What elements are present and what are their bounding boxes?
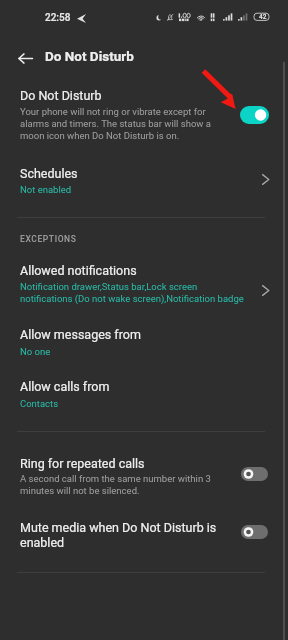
other: Open: [261, 173, 271, 186]
staticText: 22:58: [45, 12, 71, 24]
staticText: Mute media when Do Not Disturb is enable…: [20, 520, 228, 550]
button[interactable]: Allow calls from: [0, 379, 288, 425]
staticText: EXCEPTIONS: [20, 234, 77, 244]
staticText: Do Not Disturb: [20, 88, 102, 103]
staticText: 42: [259, 13, 267, 21]
button[interactable]: Mute media toggle: [241, 525, 268, 539]
staticText: No one: [20, 346, 51, 357]
button[interactable]: Ring for repeated calls: [0, 452, 288, 510]
staticText: Your phone will not ring or vibrate exce…: [20, 106, 212, 141]
staticText: A second call from the same number withi…: [20, 473, 216, 496]
button[interactable]: Allowed notifications: [0, 260, 288, 316]
staticText: Ring for repeated calls: [20, 456, 145, 471]
staticText: Not enabled: [20, 184, 72, 195]
staticText: Allow calls from: [20, 379, 110, 394]
staticText: Notification drawer,Status bar,Lock scre…: [20, 281, 270, 304]
button[interactable]: Mute media when Do Not Disturb is enable…: [0, 516, 288, 566]
button[interactable]: Do Not Disturb: [0, 84, 288, 154]
staticText: Schedules: [20, 166, 78, 181]
button[interactable]: Back: [7, 40, 43, 76]
staticText: Allow messages from: [20, 327, 141, 342]
staticText: Do Not Disturb: [45, 48, 134, 64]
button[interactable]: Schedules: [0, 162, 288, 208]
staticText: Allowed notifications: [20, 263, 137, 278]
other: Open: [261, 284, 271, 297]
button[interactable]: Allow messages from: [0, 327, 288, 373]
button[interactable]: Ring for repeated calls toggle: [241, 467, 268, 481]
button[interactable]: Do Not Disturb toggle: [240, 106, 269, 124]
staticText: Contacts: [20, 398, 59, 409]
